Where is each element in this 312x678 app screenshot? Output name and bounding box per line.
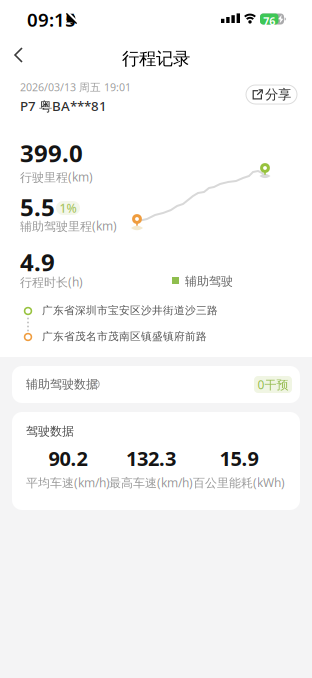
staticText: 4.9 [20,246,55,278]
staticText: 平均车速(km/h) [26,475,110,490]
staticText: 分享 [265,86,291,103]
staticText: 百公里能耗(kWh) [193,475,285,490]
staticText: 15.9 [219,445,258,472]
staticText: 399.0 [20,137,83,169]
staticText: 行程时长(h) [20,274,83,290]
button[interactable]: 分享 [246,85,297,104]
staticText: 1% [59,200,76,216]
staticText: 2026/03/13 周五 19:01 [20,80,131,94]
staticText: 76 [263,14,275,28]
staticText: 广东省深圳市宝安区沙井街道沙三路 [42,304,218,317]
staticText: 行驶里程(km) [20,169,93,185]
staticText: 132.3 [126,445,176,472]
staticText: 09:15 [27,7,76,32]
staticText: 驾驶数据 [26,424,74,439]
staticText: 行程记录 [122,48,190,69]
staticText: 辅助驾驶数据 [26,377,98,392]
button[interactable]: Back [8,45,36,65]
staticText: 90.2 [48,445,87,472]
staticText: 5.5 [20,191,55,223]
staticText: 辅助驾驶里程(km) [20,218,117,234]
staticText: ? [93,380,97,391]
staticText: 广东省茂名市茂南区镇盛镇府前路 [42,330,207,343]
staticText: 最高车速(km/h) [109,475,193,490]
staticText: 辅助驾驶 [185,274,233,289]
staticText: P7 粤BA***81 [20,97,107,115]
staticText: 0干预 [257,376,288,392]
button[interactable]: Help [90,379,100,389]
